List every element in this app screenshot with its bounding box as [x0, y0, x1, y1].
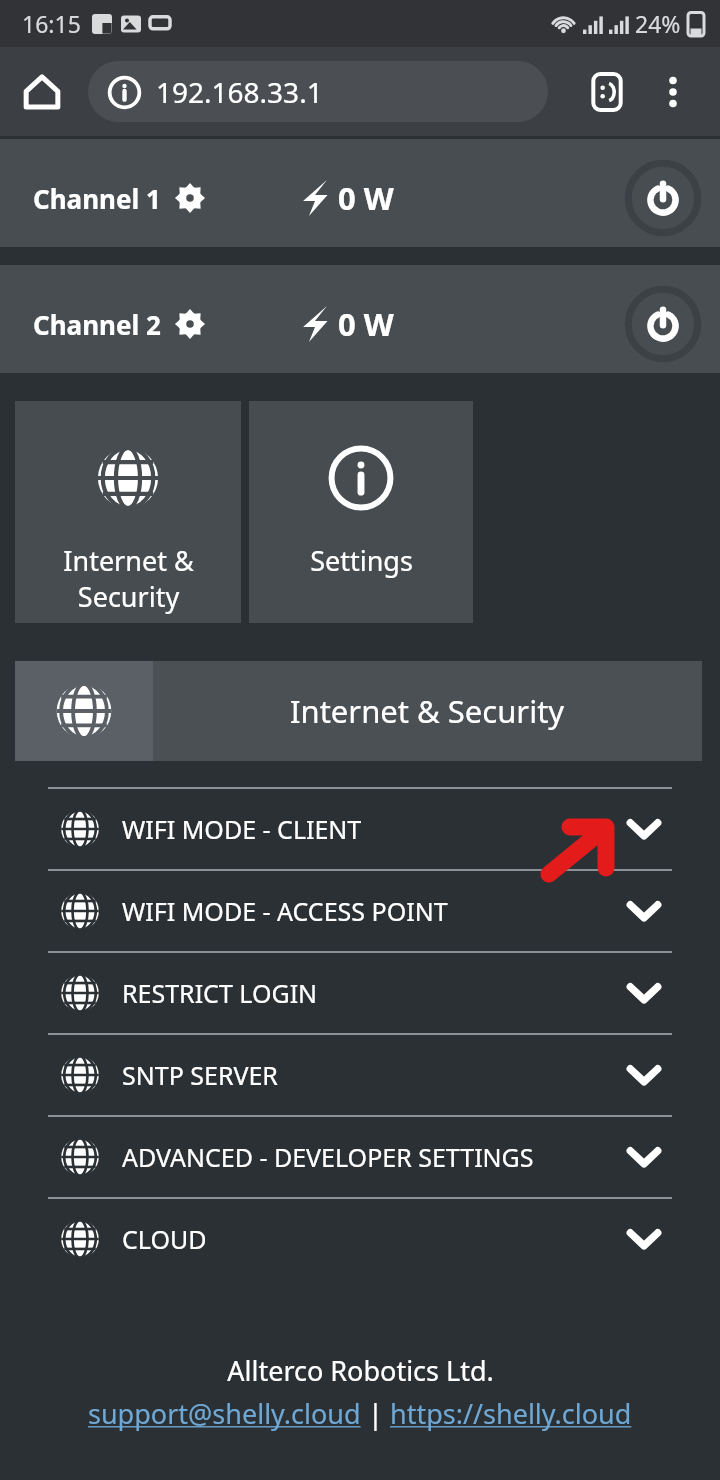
staticText: WIFI MODE - CLIENT — [122, 812, 362, 846]
staticText: | — [361, 1395, 390, 1432]
button[interactable]: More options — [648, 67, 698, 117]
button[interactable]: SNTP SERVER — [0, 1035, 720, 1115]
staticText: ADVANCED - DEVELOPER SETTINGS — [122, 1140, 534, 1174]
staticText: 16:15 — [22, 8, 81, 39]
staticText: Channel 1 — [33, 181, 161, 216]
staticText: 0 W — [338, 177, 394, 219]
button[interactable]: support@shelly.cloud — [88, 1395, 361, 1432]
button[interactable]: Tabs — [582, 67, 632, 117]
staticText: 24% — [635, 8, 681, 39]
staticText: SNTP SERVER — [122, 1058, 278, 1092]
staticText: support@shelly.cloud — [88, 1395, 361, 1432]
button[interactable]: Internet & Security — [15, 661, 702, 761]
staticText: Internet & Security — [290, 690, 565, 732]
staticText: Settings — [310, 542, 413, 579]
button[interactable]: WIFI MODE - CLIENT — [0, 789, 720, 869]
button[interactable]: Channel 2 — [0, 265, 720, 373]
button[interactable]: Toggle Channel 1 — [626, 161, 700, 235]
button[interactable]: 192.168.33.1 — [88, 61, 548, 122]
staticText: Channel 2 — [33, 307, 161, 342]
button[interactable]: WIFI MODE - ACCESS POINT — [0, 871, 720, 951]
staticText: RESTRICT LOGIN — [122, 976, 318, 1010]
button[interactable]: Settings — [249, 401, 473, 623]
staticText: Allterco Robotics Ltd. — [227, 1352, 494, 1389]
button[interactable]: https://shelly.cloud — [390, 1395, 632, 1432]
staticText: WIFI MODE - ACCESS POINT — [122, 894, 448, 928]
button[interactable]: RESTRICT LOGIN — [0, 953, 720, 1033]
button[interactable]: Home — [16, 66, 68, 118]
button[interactable]: Toggle Channel 2 — [626, 287, 700, 361]
staticText: 0 W — [338, 303, 394, 345]
staticText: https://shelly.cloud — [390, 1395, 632, 1432]
staticText: Internet & Security — [63, 542, 194, 615]
button[interactable]: Channel 1 — [0, 139, 720, 247]
staticText: 192.168.33.1 — [156, 73, 323, 111]
button[interactable]: Internet & Security — [15, 401, 241, 623]
button[interactable]: ADVANCED - DEVELOPER SETTINGS — [0, 1117, 720, 1197]
staticText: CLOUD — [122, 1222, 207, 1256]
button[interactable]: CLOUD — [0, 1199, 720, 1279]
